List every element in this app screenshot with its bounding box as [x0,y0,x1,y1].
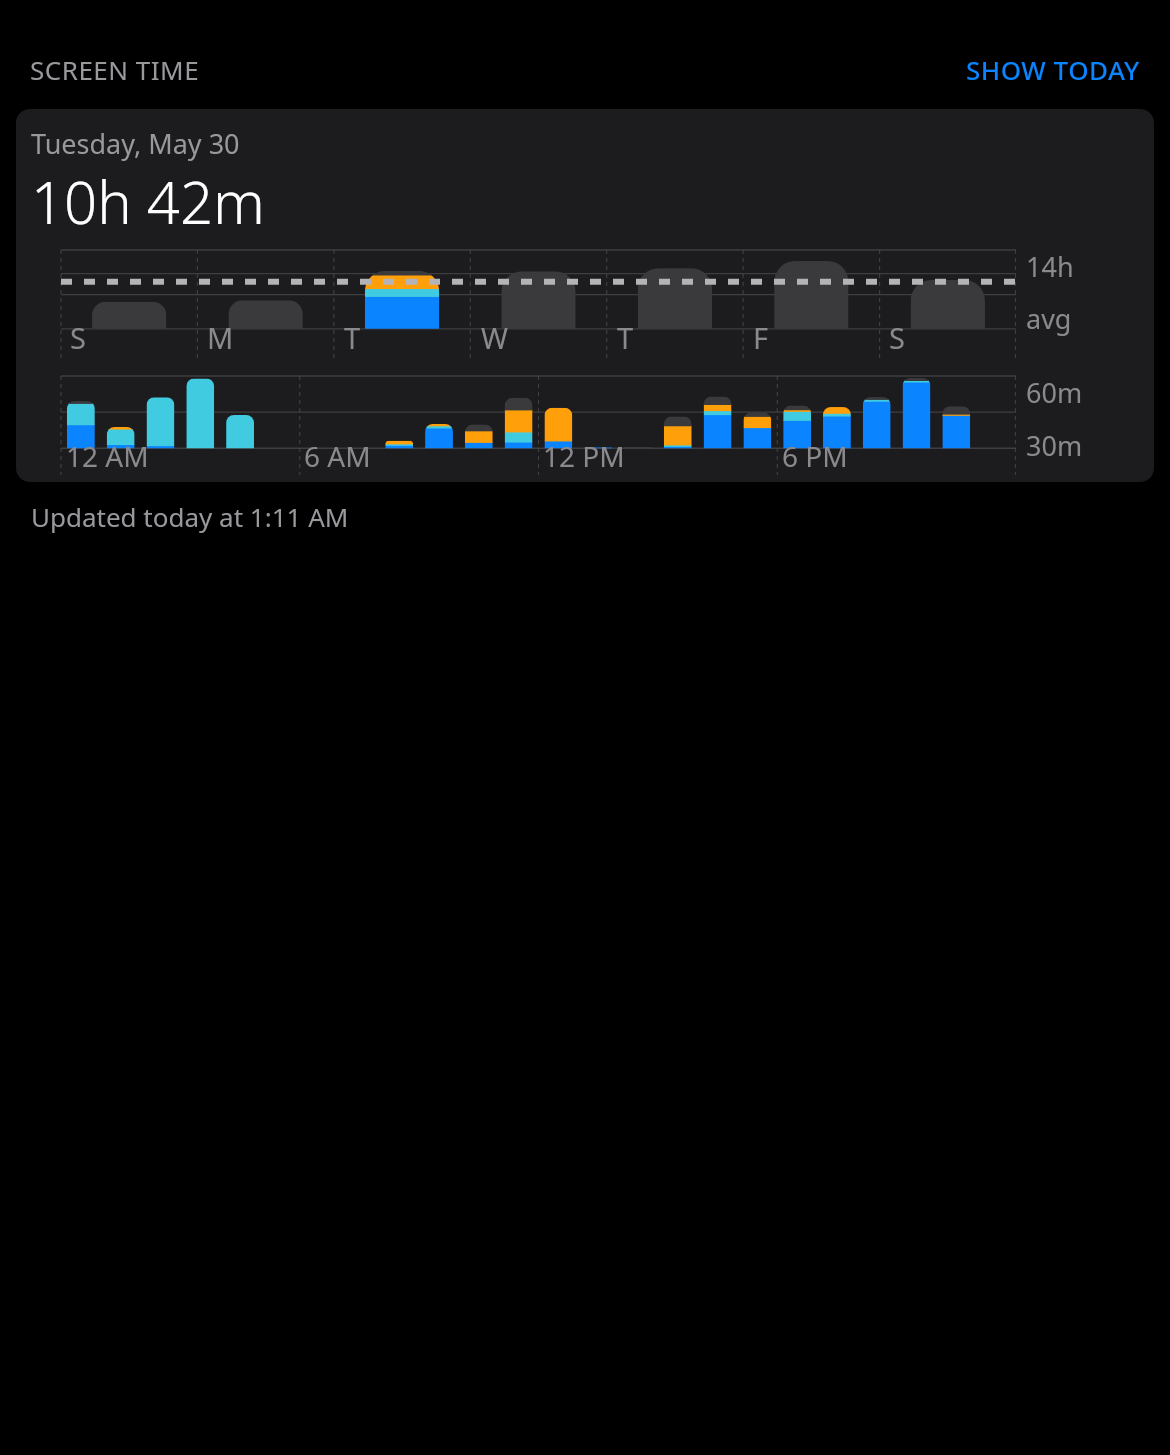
staticText: 14h [1026,248,1074,285]
staticText: Tuesday, May 30 [31,125,240,162]
staticText: T [344,318,361,357]
staticText: F [753,318,769,357]
staticText: 30m [1026,427,1083,464]
staticText: SCREEN TIME [30,52,200,87]
staticText: T [617,318,634,357]
button[interactable]: Tuesday, May 30 [16,109,1154,482]
staticText: avg [1026,300,1072,337]
staticText: 10h 42m [31,162,265,241]
staticText: 6 AM [304,437,371,475]
staticText: 12 AM [66,437,149,475]
button[interactable]: SHOW TODAY [966,52,1140,87]
staticText: W [481,318,508,357]
staticText: 12 PM [543,437,625,475]
staticText: S [889,318,905,357]
staticText: 6 PM [782,437,848,475]
staticText: S [70,318,86,357]
staticText: Updated today at 1:11 AM [31,499,349,534]
staticText: M [207,318,234,357]
staticText: SHOW TODAY [966,52,1140,87]
staticText: 60m [1026,374,1083,411]
